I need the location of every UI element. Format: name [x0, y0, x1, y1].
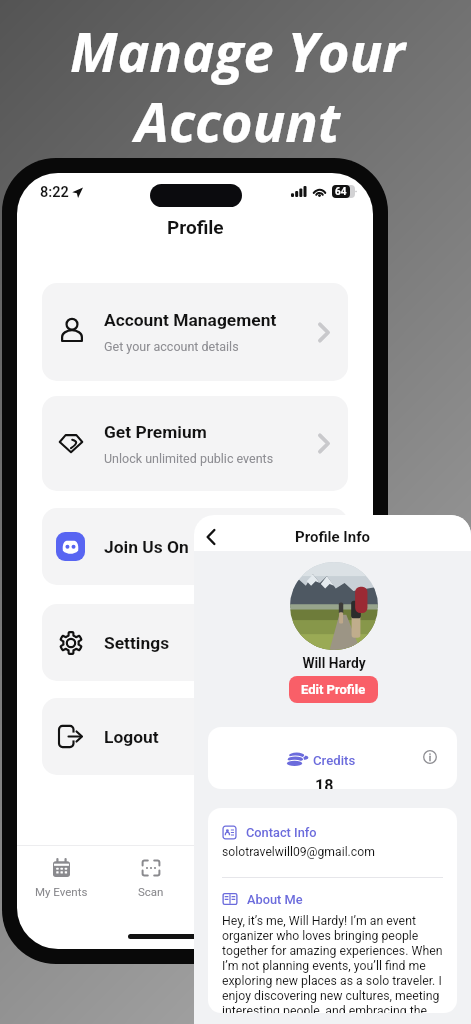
staticText: Profile	[167, 216, 224, 238]
button[interactable]: My Events	[17, 846, 106, 908]
staticText: Unlock unlimited public events	[104, 451, 274, 466]
button[interactable]: Account Management	[42, 283, 348, 381]
button[interactable]: Edit Profile	[289, 676, 378, 703]
button[interactable]: Back	[198, 524, 224, 550]
staticText: Settings	[104, 633, 170, 653]
button[interactable]: Get Premium	[42, 396, 348, 491]
staticText: Account Management	[104, 310, 277, 330]
button[interactable]: Logout	[42, 698, 348, 775]
staticText: My Events	[35, 885, 88, 898]
button[interactable]: Info	[419, 746, 441, 768]
staticText: Credits	[313, 753, 356, 768]
staticText: 18	[315, 776, 334, 789]
staticText: 64	[335, 186, 347, 198]
button[interactable]: Join Us On Discord	[42, 508, 348, 585]
staticText: Logout	[104, 727, 159, 747]
staticText: Profile Info	[295, 528, 370, 546]
staticText: Manage Your Account	[2, 14, 471, 158]
staticText: solotravelwill09@gmail.com	[222, 845, 375, 859]
staticText: Get Premium	[104, 422, 207, 442]
staticText: Get your account details	[104, 339, 239, 354]
button[interactable]: Scan	[106, 846, 195, 908]
staticText: Join Us On Discord	[104, 537, 253, 557]
staticText: Scan	[138, 885, 164, 898]
staticText: Will Hardy	[302, 655, 366, 671]
button[interactable]: Settings	[42, 604, 348, 681]
staticText: 8:22	[40, 184, 69, 201]
staticText: Contact Info	[246, 825, 317, 840]
staticText: Edit Profile	[301, 682, 366, 697]
staticText: Hey, it’s me, Will Hardy! I’m an event o…	[222, 914, 443, 1013]
staticText: About Me	[247, 892, 303, 907]
